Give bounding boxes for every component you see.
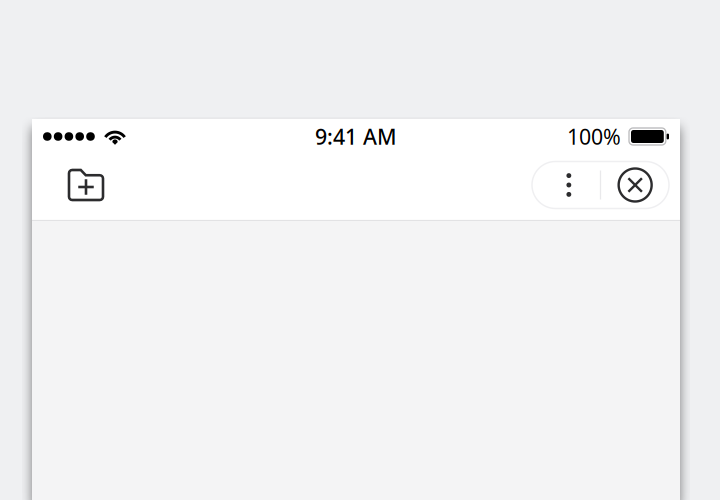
button[interactable]: New Folder [55, 159, 117, 211]
staticText: 9:41 AM [315, 122, 397, 151]
button[interactable]: Close [601, 161, 669, 208]
button[interactable]: More [532, 161, 600, 208]
staticText: 100% [567, 122, 621, 151]
